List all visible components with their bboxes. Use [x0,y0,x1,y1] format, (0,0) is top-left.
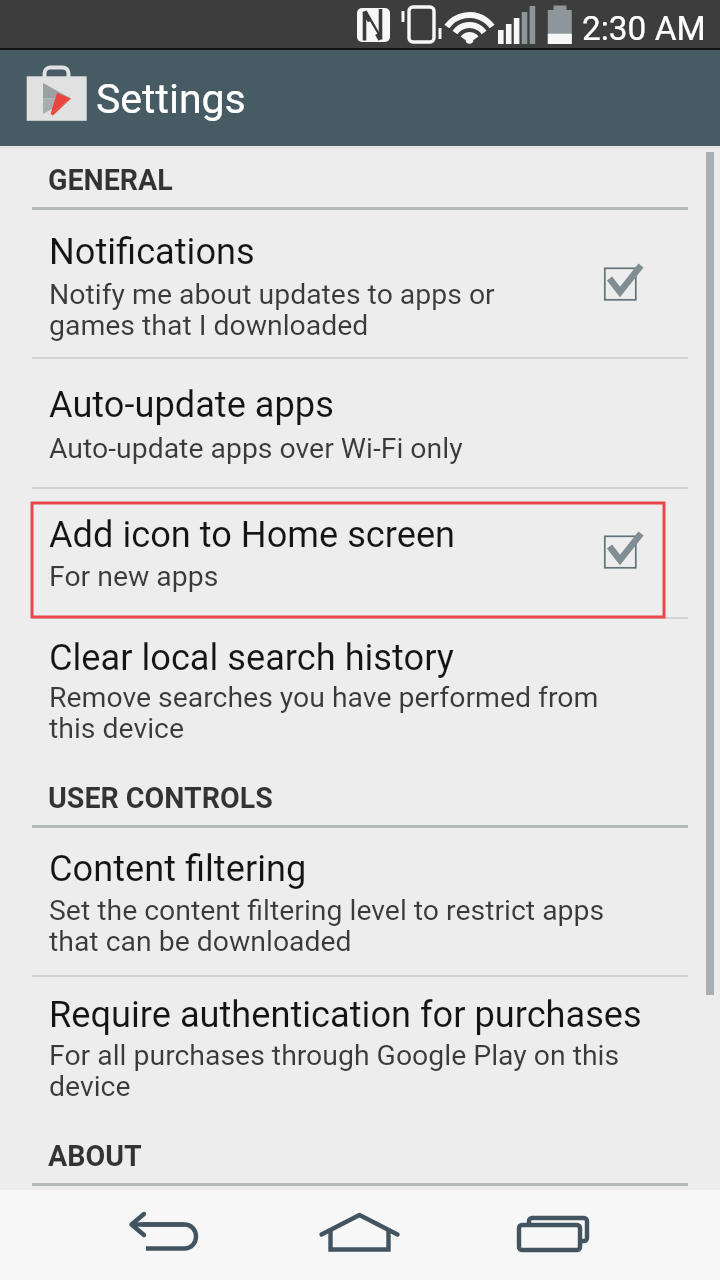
button[interactable]: Add icon to Home screen [0,487,720,617]
button[interactable]: Home [240,1190,480,1280]
staticText: ABOUT [48,1139,142,1173]
staticText: Content filtering [49,847,307,889]
staticText: Set the content filtering level to restr… [49,894,605,958]
button[interactable]: Clear local search history [0,617,720,765]
button[interactable]: Recent apps [480,1190,720,1280]
staticText: Remove searches you have performed from … [49,681,599,745]
button[interactable]: Content filtering [0,825,720,975]
staticText: Notify me about updates to apps or games… [49,278,495,342]
staticText: Auto-update apps [49,383,334,425]
staticText: 2:30 AM [582,9,706,48]
button[interactable]: USER CONTROLS [0,765,720,828]
button[interactable]: Back [0,1190,240,1280]
button[interactable]: Require authentication for purchases [0,975,720,1123]
staticText: For new apps [49,560,219,593]
staticText: Clear local search history [49,636,454,678]
staticText: GENERAL [48,163,173,197]
staticText: Require authentication for purchases [49,993,642,1035]
button[interactable]: GENERAL [0,146,720,210]
staticText: Add icon to Home screen [49,513,456,555]
button[interactable]: Notifications [0,207,720,357]
staticText: Settings [96,75,246,123]
staticText: Auto-update apps over Wi-Fi only [49,432,463,465]
button[interactable]: Auto-update apps [0,357,720,487]
button[interactable]: ABOUT [0,1123,720,1186]
staticText: Notifications [49,230,255,272]
staticText: For all purchases through Google Play on… [49,1039,620,1103]
staticText: USER CONTROLS [48,781,273,815]
